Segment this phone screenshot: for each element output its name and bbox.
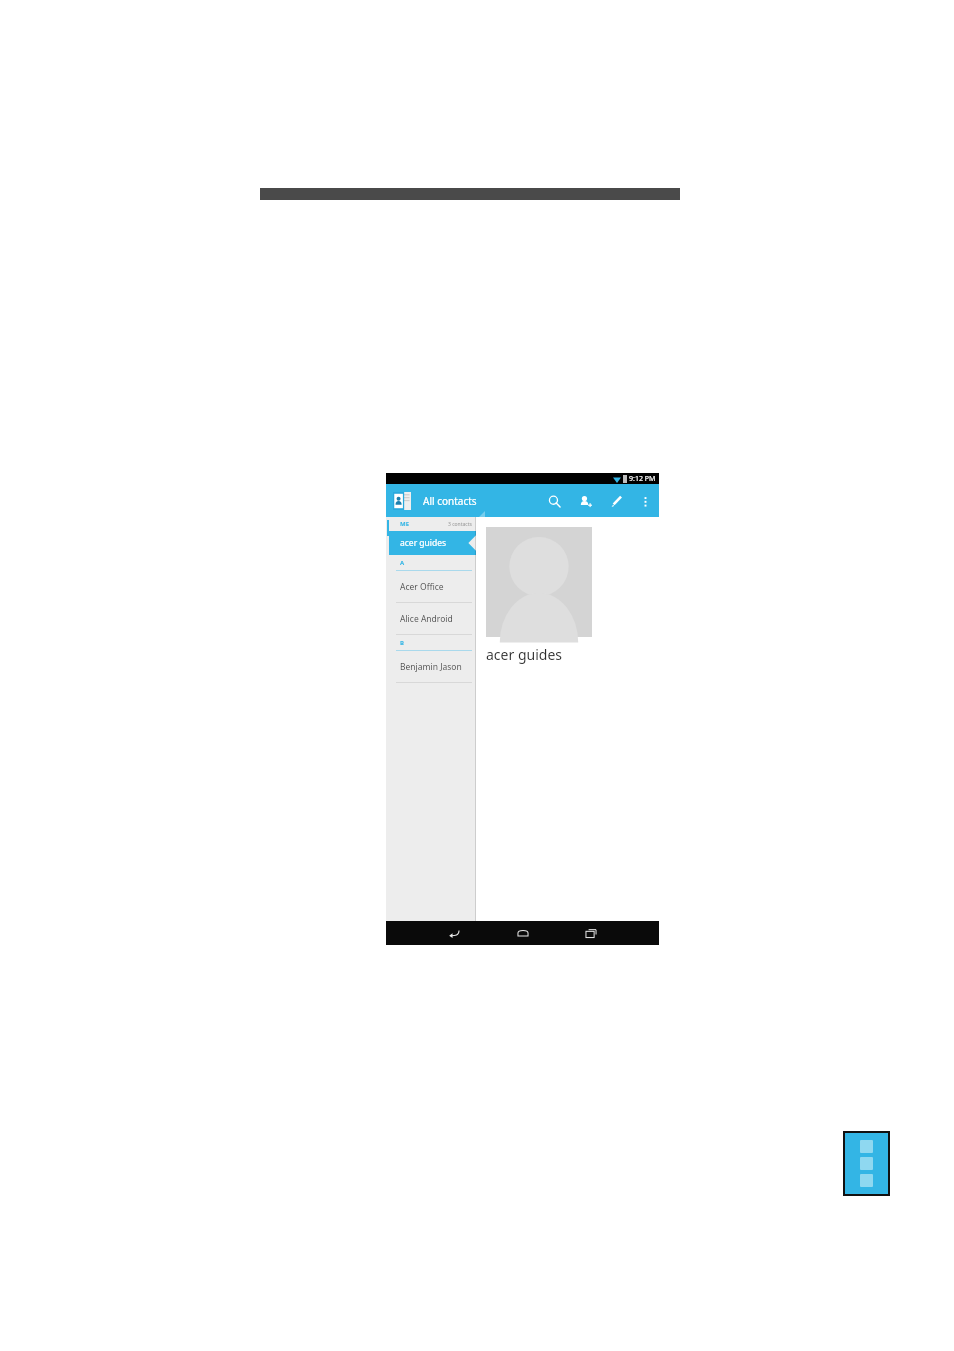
staticText: 3 contacts — [448, 521, 472, 528]
button[interactable]: acer guides — [386, 531, 476, 555]
staticText: All contacts — [423, 494, 477, 508]
button[interactable]: Back — [441, 923, 467, 943]
staticText: Benjamin Jason — [400, 661, 462, 673]
staticText: ME — [400, 520, 410, 528]
staticText: Acer Office — [400, 581, 444, 593]
button[interactable]: Acer Office — [386, 571, 476, 603]
button[interactable]: Benjamin Jason — [386, 651, 476, 683]
staticText: Alice Android — [400, 613, 453, 625]
button[interactable]: Contacts app — [391, 490, 413, 512]
staticText: acer guides — [400, 537, 447, 549]
button[interactable]: Alice Android — [386, 603, 476, 635]
button[interactable]: Recents — [578, 923, 604, 943]
staticText: B — [400, 639, 404, 647]
button[interactable]: More options — [636, 492, 654, 510]
button[interactable]: All contacts — [423, 484, 545, 517]
button[interactable]: Search — [545, 492, 563, 510]
staticText: acer guides — [486, 645, 562, 664]
staticText: 9:12 PM — [629, 474, 656, 484]
staticText: A — [400, 559, 405, 567]
button[interactable]: Add contact — [576, 492, 594, 510]
button[interactable]: Home — [510, 923, 536, 943]
button[interactable]: Edit — [607, 492, 625, 510]
